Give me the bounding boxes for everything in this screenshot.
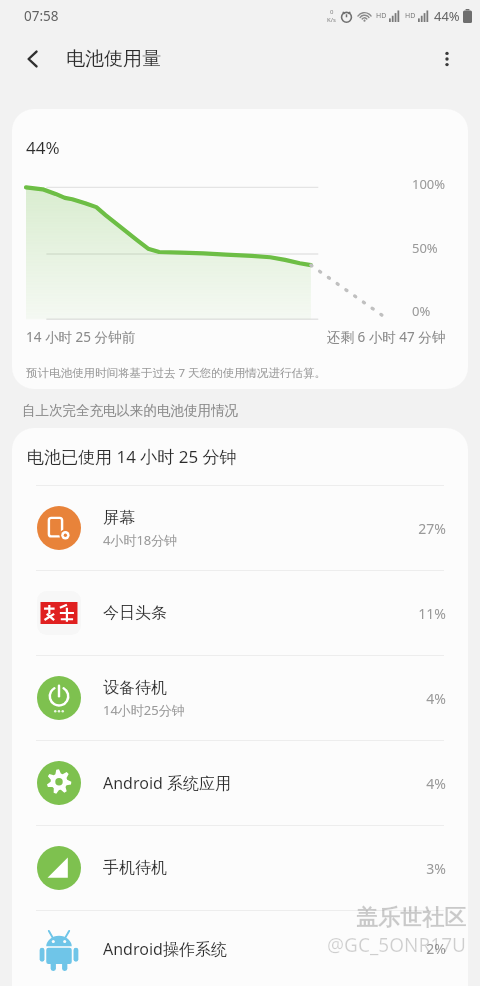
button[interactable]: Android 系统应用 xyxy=(12,741,468,825)
staticText: 手机待机 xyxy=(103,858,167,878)
staticText: 0% xyxy=(412,302,431,320)
staticText: 3% xyxy=(426,859,446,878)
staticText: 50% xyxy=(412,239,438,257)
staticText: K/s xyxy=(327,16,336,24)
button[interactable]: Back xyxy=(10,36,56,82)
staticText: HD xyxy=(376,11,387,21)
staticText: 44% xyxy=(26,136,60,159)
staticText: 27% xyxy=(418,519,446,538)
staticText: 4小时18分钟 xyxy=(103,531,178,549)
staticText: Android操作系统 xyxy=(103,938,227,960)
staticText: 4% xyxy=(426,689,446,708)
staticText: Android 系统应用 xyxy=(103,772,232,794)
button[interactable]: 设备待机 xyxy=(12,656,468,740)
staticText: 2% xyxy=(426,939,446,958)
button[interactable]: 手机待机 xyxy=(12,826,468,910)
staticText: 100% xyxy=(412,175,446,193)
staticText: 44% xyxy=(434,7,460,25)
staticText: 还剩 6 小时 47 分钟 xyxy=(327,328,446,346)
staticText: 自上次完全充电以来的电池使用情况 xyxy=(22,402,238,419)
button[interactable]: More options xyxy=(424,36,470,82)
staticText: 11% xyxy=(418,604,446,623)
button[interactable]: 屏幕 xyxy=(12,486,468,570)
staticText: 今日头条 xyxy=(103,603,167,623)
staticText: 4% xyxy=(426,774,446,793)
staticText: 设备待机 xyxy=(103,678,167,698)
staticText: 电池已使用 14 小时 25 分钟 xyxy=(27,445,237,468)
button[interactable]: 今日头条 xyxy=(12,571,468,655)
staticText: 14 小时 25 分钟前 xyxy=(26,328,135,346)
staticText: 盖乐世社区 xyxy=(356,904,466,932)
staticText: 屏幕 xyxy=(103,508,135,528)
staticText: 电池使用量 xyxy=(66,47,161,71)
staticText: 0 xyxy=(330,8,334,16)
staticText: 预计电池使用时间将基于过去 7 天您的使用情况进行估算。 xyxy=(26,365,327,381)
staticText: 07:58 xyxy=(24,7,59,25)
staticText: HD xyxy=(405,11,416,21)
staticText: @GC_5ONR17U xyxy=(327,932,466,958)
staticText: 14小时25分钟 xyxy=(103,701,185,719)
button[interactable]: Android操作系统 xyxy=(12,911,468,986)
